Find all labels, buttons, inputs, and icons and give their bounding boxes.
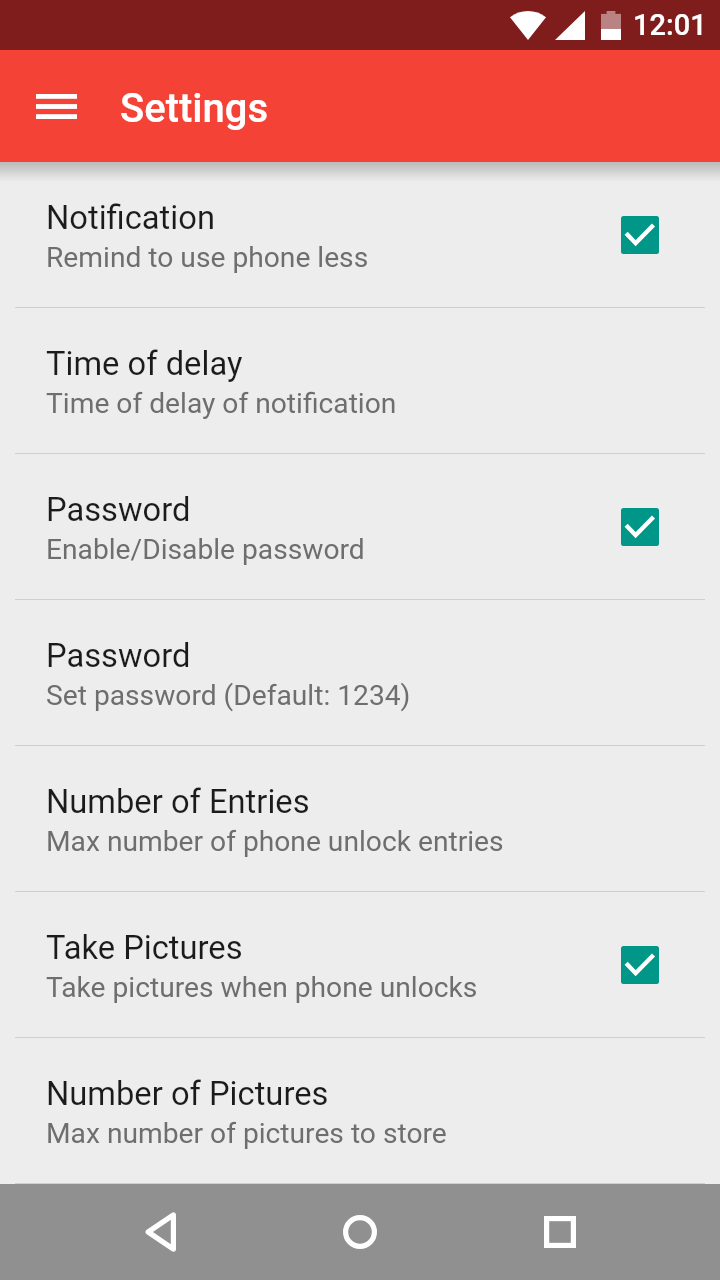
- staticText: Take pictures when phone unlocks: [46, 971, 478, 1004]
- staticText: Settings: [120, 85, 269, 132]
- staticText: Time of delay of notification: [46, 387, 397, 420]
- staticText: Set password (Default: 1234): [46, 679, 411, 712]
- staticText: Password: [46, 637, 191, 675]
- staticText: Time of delay: [46, 345, 243, 383]
- button[interactable]: Time of delay: [0, 308, 720, 453]
- button[interactable]: Notification: [0, 162, 720, 307]
- button[interactable]: Open navigation drawer: [16, 66, 96, 146]
- staticText: Remind to use phone less: [46, 241, 369, 274]
- staticText: Enable/Disable password: [46, 533, 365, 566]
- staticText: Number of Entries: [46, 783, 310, 821]
- button[interactable]: Password: [0, 454, 720, 599]
- button[interactable]: Back: [110, 1184, 210, 1280]
- button[interactable]: Number of Pictures: [0, 1038, 720, 1183]
- staticText: Take Pictures: [46, 929, 243, 967]
- button[interactable]: Number of Entries: [0, 746, 720, 891]
- staticText: Max number of pictures to store: [46, 1117, 447, 1150]
- button[interactable]: Home: [310, 1184, 410, 1280]
- staticText: 12:01: [633, 8, 707, 42]
- button[interactable]: Toggle Take Pictures: [621, 946, 659, 984]
- staticText: Max number of phone unlock entries: [46, 825, 504, 858]
- staticText: Number of Pictures: [46, 1075, 329, 1113]
- staticText: Notification: [46, 199, 215, 237]
- button[interactable]: Recent apps: [510, 1184, 610, 1280]
- button[interactable]: Toggle Password: [621, 508, 659, 546]
- button[interactable]: Toggle Notification: [621, 216, 659, 254]
- button[interactable]: Password: [0, 600, 720, 745]
- staticText: Password: [46, 491, 191, 529]
- button[interactable]: Take Pictures: [0, 892, 720, 1037]
